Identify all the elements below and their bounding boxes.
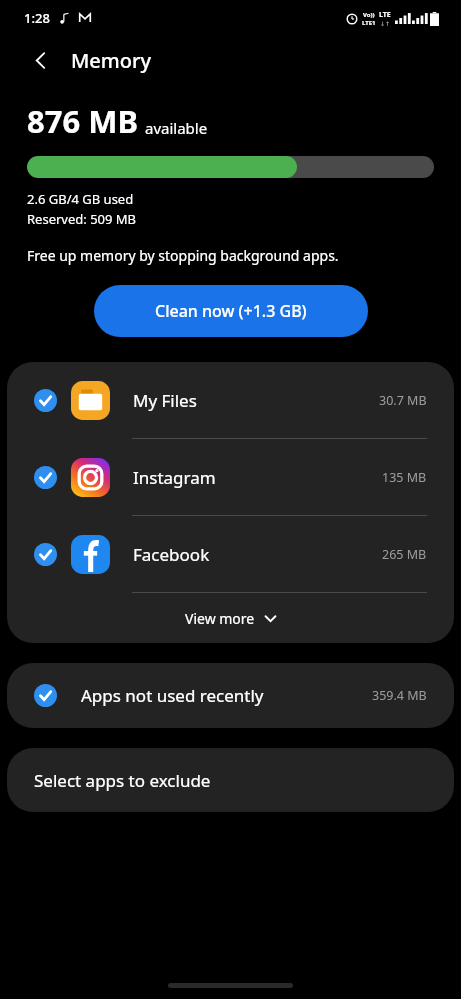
button[interactable]: View more bbox=[7, 593, 454, 643]
button[interactable]: Facebook bbox=[7, 516, 454, 592]
staticText: 265 MB bbox=[382, 546, 427, 563]
staticText: 30.7 MB bbox=[379, 392, 427, 409]
staticText: Instagram bbox=[133, 466, 382, 489]
staticText: Select apps to exclude bbox=[34, 769, 211, 792]
staticText: Clean now (+1.3 GB) bbox=[155, 300, 307, 322]
staticText: LTE1 bbox=[362, 19, 376, 27]
staticText: 876 MB bbox=[27, 100, 139, 142]
button[interactable]: My Files bbox=[7, 362, 454, 438]
staticText: View more bbox=[185, 609, 255, 628]
button[interactable]: Clean now (+1.3 GB) bbox=[94, 285, 368, 337]
staticText: Reserved: 509 MB bbox=[27, 210, 137, 228]
staticText: Facebook bbox=[133, 543, 382, 566]
staticText: available bbox=[145, 118, 208, 138]
staticText: Memory bbox=[71, 47, 152, 74]
staticText: 135 MB bbox=[382, 469, 427, 486]
staticText: LTE bbox=[379, 10, 391, 20]
staticText: 1:28 bbox=[24, 9, 50, 27]
button[interactable]: Instagram bbox=[7, 439, 454, 515]
staticText: Apps not used recently bbox=[81, 684, 372, 707]
staticText: 359.4 MB bbox=[372, 687, 427, 704]
staticText: 2.6 GB/4 GB used bbox=[27, 190, 134, 208]
button[interactable]: Back bbox=[24, 43, 58, 77]
staticText: ↓↑ bbox=[380, 20, 391, 27]
staticText: Vo)) bbox=[363, 11, 375, 19]
button[interactable]: Select apps to exclude bbox=[7, 748, 454, 812]
staticText: My Files bbox=[133, 389, 379, 412]
button[interactable]: Apps not used recently bbox=[7, 663, 454, 728]
staticText: Free up memory by stopping background ap… bbox=[27, 246, 434, 265]
